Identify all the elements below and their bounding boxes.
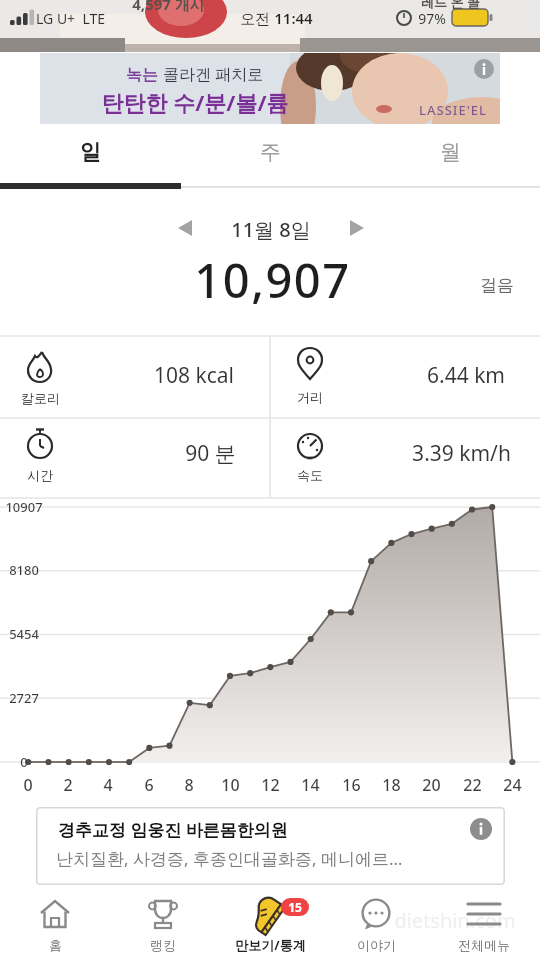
staticText: 만보기/통계 [235, 936, 306, 954]
staticText: 랭킹 [150, 937, 176, 953]
button[interactable]: 랭킹 [123, 892, 203, 958]
staticText: 월 [440, 139, 461, 165]
staticText: 이야기 [357, 937, 396, 953]
staticText: 90 분 [185, 439, 236, 468]
staticText: 5454 [9, 625, 39, 643]
staticText: 24 [503, 774, 522, 796]
staticText: 탄탄한 수/분/볼/륨 [101, 87, 289, 117]
staticText: 콜라겐 패치로 [163, 63, 264, 85]
staticText: 15 [288, 899, 302, 915]
staticText: 4,597 개시 [132, 0, 205, 14]
button[interactable]: 주 [180, 124, 360, 179]
staticText: 12 [261, 774, 280, 796]
staticText: 14 [301, 774, 320, 796]
button[interactable] [342, 210, 372, 246]
staticText: 시간 [27, 467, 53, 483]
button[interactable] [170, 210, 200, 246]
staticText: 0 [20, 753, 28, 771]
staticText: 3.39 km/h [412, 439, 511, 468]
button[interactable] [0, 336, 270, 418]
staticText: 6.44 km [427, 361, 505, 390]
staticText: LASSIE'EL [419, 101, 487, 119]
staticText: 2 [63, 774, 73, 796]
button[interactable]: 녹는 [40, 53, 500, 124]
staticText: 걸음 [480, 275, 514, 296]
button[interactable]: 월 [360, 124, 540, 179]
button[interactable] [270, 418, 540, 498]
staticText: 경추교정 임웅진 바른몸한의원 [58, 818, 288, 841]
staticText: 0 [23, 774, 33, 796]
staticText: 레드 온 콜 [421, 0, 480, 11]
button[interactable] [270, 336, 540, 418]
staticText: 주 [260, 139, 281, 165]
staticText: LG U+ LTE [36, 9, 106, 28]
staticText: 오전 11:44 [240, 8, 313, 28]
staticText: 2727 [9, 689, 39, 707]
button[interactable]: 일 [0, 124, 180, 179]
button[interactable]: 경추교정 임웅진 바른몸한의원 [36, 807, 505, 885]
staticText: 22 [463, 774, 482, 796]
staticText: 97% [418, 9, 446, 28]
staticText: 10907 [5, 498, 43, 516]
button[interactable]: 이야기 [336, 892, 416, 958]
button[interactable]: 전체메뉴 [444, 892, 524, 958]
staticText: 6 [144, 774, 154, 796]
staticText: 홈 [49, 937, 62, 953]
staticText: 난치질환, 사경증, 후종인대골화증, 메니에르… [56, 847, 403, 870]
button[interactable]: 홈 [15, 892, 95, 958]
staticText: 108 kcal [154, 361, 234, 390]
staticText: 18 [382, 774, 401, 796]
staticText: 8180 [9, 561, 39, 579]
staticText: 속도 [297, 467, 323, 483]
staticText: 녹는 [126, 63, 163, 85]
staticText: 거리 [297, 389, 323, 405]
staticText: dietshin.com [394, 907, 516, 934]
staticText: 4 [103, 774, 113, 796]
staticText: 10,907 [194, 248, 351, 310]
staticText: 11월 8일 [231, 216, 311, 243]
staticText: 8 [184, 774, 194, 796]
staticText: 10 [221, 774, 240, 796]
button[interactable] [0, 418, 270, 498]
staticText: 20 [422, 774, 441, 796]
staticText: 전체메뉴 [458, 937, 510, 953]
staticText: 칼로리 [21, 390, 60, 406]
button[interactable]: 15 [225, 892, 315, 958]
staticText: 16 [342, 774, 361, 796]
staticText: 일 [80, 139, 101, 165]
